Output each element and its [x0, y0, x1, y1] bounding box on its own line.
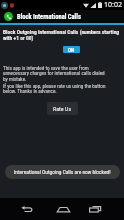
button[interactable]: ON: [63, 46, 80, 53]
staticText: Rate Us: [53, 105, 72, 112]
staticText: Block Outgoing International Calls (numb…: [3, 29, 121, 41]
staticText: If you like this app, please rate us usi…: [3, 83, 107, 95]
staticText: This app is intended to save the user fr…: [3, 65, 107, 83]
staticText: ON: [68, 47, 75, 53]
staticText: 10:02: [104, 0, 122, 10]
staticText: International Outgoing Calls are now blo…: [14, 169, 111, 175]
staticText: Block International Calls: [17, 13, 81, 21]
button[interactable]: Back: [16, 198, 38, 220]
button[interactable]: Rate Us: [47, 102, 78, 115]
button[interactable]: Recent apps: [84, 198, 106, 220]
button[interactable]: Home: [52, 198, 74, 220]
